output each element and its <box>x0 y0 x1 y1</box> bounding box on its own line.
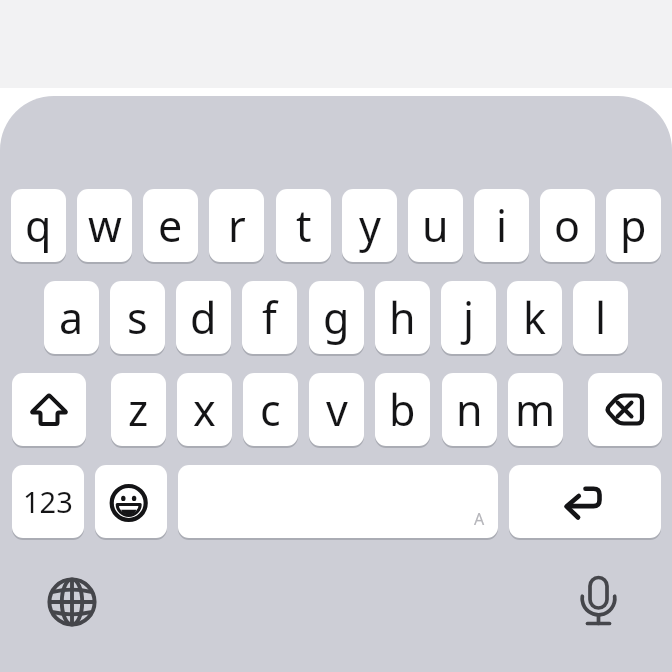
staticText: w <box>88 196 122 255</box>
staticText: r <box>228 196 246 255</box>
staticText: e <box>158 196 183 255</box>
button[interactable]: l <box>573 281 628 354</box>
staticText: A <box>474 508 485 530</box>
staticText: a <box>59 288 84 347</box>
staticText: q <box>25 196 52 255</box>
button[interactable] <box>588 373 662 446</box>
button[interactable]: u <box>408 189 463 262</box>
staticText: z <box>128 380 149 439</box>
staticText: i <box>496 196 508 255</box>
staticText: m <box>515 380 556 439</box>
staticText: s <box>127 288 148 347</box>
button[interactable]: b <box>375 373 430 446</box>
button[interactable]: s <box>110 281 165 354</box>
staticText: f <box>262 288 277 347</box>
button[interactable]: x <box>177 373 232 446</box>
button[interactable]: y <box>342 189 397 262</box>
button[interactable]: 123 <box>12 465 84 538</box>
button[interactable] <box>570 572 627 629</box>
staticText: n <box>456 380 483 439</box>
button[interactable]: o <box>540 189 595 262</box>
button[interactable]: q <box>11 189 66 262</box>
button[interactable]: r <box>209 189 264 262</box>
staticText: t <box>296 196 312 255</box>
staticText: p <box>620 196 647 255</box>
staticText: g <box>323 288 350 347</box>
button[interactable]: g <box>309 281 364 354</box>
button[interactable]: k <box>507 281 562 354</box>
staticText: v <box>326 380 348 439</box>
button[interactable] <box>178 465 498 538</box>
staticText: b <box>389 380 416 439</box>
button[interactable]: v <box>309 373 364 446</box>
button[interactable] <box>12 373 86 446</box>
button[interactable]: n <box>442 373 497 446</box>
staticText: u <box>422 196 449 255</box>
staticText: 123 <box>23 482 73 521</box>
button[interactable]: i <box>474 189 529 262</box>
staticText: y <box>359 196 381 255</box>
staticText: j <box>463 288 475 347</box>
staticText: l <box>595 288 607 347</box>
button[interactable]: w <box>77 189 132 262</box>
button[interactable]: f <box>242 281 297 354</box>
staticText: o <box>554 196 581 255</box>
button[interactable]: t <box>276 189 331 262</box>
button[interactable]: h <box>375 281 430 354</box>
staticText: c <box>260 380 281 439</box>
button[interactable]: c <box>243 373 298 446</box>
staticText: k <box>523 288 546 347</box>
button[interactable]: d <box>176 281 231 354</box>
button[interactable] <box>95 465 167 538</box>
button[interactable]: e <box>143 189 198 262</box>
button[interactable]: p <box>606 189 661 262</box>
button[interactable]: a <box>44 281 99 354</box>
staticText: h <box>389 288 416 347</box>
button[interactable]: j <box>441 281 496 354</box>
button[interactable]: m <box>508 373 563 446</box>
button[interactable] <box>509 465 661 538</box>
staticText: x <box>193 380 216 439</box>
button[interactable] <box>44 574 100 630</box>
staticText: d <box>190 288 217 347</box>
button[interactable]: z <box>111 373 166 446</box>
